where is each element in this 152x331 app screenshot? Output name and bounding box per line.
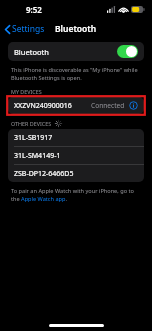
- button[interactable]: 31L-SB1917: [8, 129, 144, 146]
- button[interactable]: XXZVN240900016: [8, 97, 144, 114]
- button[interactable]: Settings: [0, 20, 51, 38]
- staticText: Settings: [12, 23, 45, 35]
- staticText: 31L-SM4149-1: [14, 151, 61, 161]
- staticText: XXZVN240900016: [14, 101, 72, 111]
- staticText: This iPhone is discoverable as "My iPhon…: [11, 66, 141, 81]
- staticText: MY DEVICES: [11, 88, 42, 95]
- staticText: Bluetooth: [55, 23, 97, 35]
- button[interactable]: ZSB-DP12-6466D5: [8, 165, 144, 182]
- button[interactable]: More info: [129, 101, 138, 110]
- button[interactable]: Bluetooth: [8, 42, 144, 61]
- staticText: Connected: [91, 101, 125, 110]
- staticText: 9:52: [26, 4, 42, 15]
- button[interactable]: 31L-SM4149-1: [8, 147, 144, 164]
- staticText: OTHER DEVICES: [11, 120, 52, 127]
- button[interactable]: To pair an Apple Watch with your iPhone,…: [11, 187, 141, 202]
- staticText: Bluetooth: [14, 47, 49, 57]
- button[interactable]: Bluetooth toggle, on: [117, 45, 138, 58]
- staticText: ZSB-DP12-6466D5: [14, 169, 74, 179]
- staticText: 31L-SB1917: [14, 133, 53, 143]
